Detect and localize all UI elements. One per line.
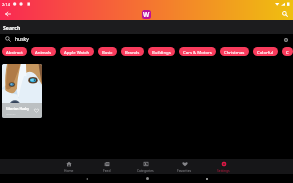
button[interactable]: Clear search	[283, 37, 288, 42]
button[interactable]: Brands	[121, 47, 144, 56]
staticText: Animals	[35, 49, 52, 55]
staticText: Colorful	[257, 49, 274, 55]
button[interactable]: Custom Wall	[282, 47, 293, 56]
staticText: Brands	[125, 49, 140, 55]
button[interactable]: Home	[50, 159, 88, 174]
button[interactable]: Buildings	[148, 47, 175, 56]
staticText: Custom Wall	[286, 49, 289, 55]
other: Home	[146, 177, 149, 180]
staticText: Search	[3, 24, 21, 31]
staticText: Settings	[217, 168, 230, 172]
button[interactable]: Favorites	[165, 159, 204, 174]
button[interactable]: Basic	[98, 47, 117, 56]
staticText: Siberian Husky	[6, 107, 30, 111]
staticText: Categories	[137, 168, 154, 172]
staticText: Feed	[103, 168, 111, 172]
button[interactable]: Christmas	[220, 47, 249, 56]
button[interactable]: Settings	[204, 159, 243, 174]
button[interactable]: Cars & Motors	[179, 47, 216, 56]
button[interactable]: Categories	[126, 159, 165, 174]
button[interactable]: Search	[277, 8, 293, 20]
staticText: 2:14	[2, 2, 10, 7]
button[interactable]: Animals	[31, 47, 56, 56]
button[interactable]: App logo	[142, 10, 151, 19]
staticText: W	[143, 10, 150, 19]
staticText: Apple Watch	[64, 49, 90, 55]
staticText: Basic	[102, 49, 113, 55]
staticText: Animals	[6, 112, 16, 115]
staticText: Christmas	[224, 49, 245, 55]
staticText: Home	[64, 168, 74, 172]
staticText: Cars & Motors	[183, 49, 212, 55]
button[interactable]: Back	[0, 8, 16, 20]
button[interactable]: Feed	[88, 159, 126, 174]
button[interactable]: Apple Watch	[60, 47, 94, 56]
button[interactable]: Abstract	[2, 47, 27, 56]
button[interactable]: Colorful	[253, 47, 278, 56]
other: Back	[85, 177, 89, 181]
staticText: Buildings	[152, 49, 171, 55]
staticText: Abstract	[6, 49, 23, 55]
button[interactable]: Siberian Husky	[2, 64, 42, 118]
staticText: husky	[15, 36, 29, 43]
button[interactable]: husky	[2, 34, 291, 44]
button[interactable]: Favorite	[33, 107, 40, 114]
staticText: Favorites	[177, 168, 192, 172]
